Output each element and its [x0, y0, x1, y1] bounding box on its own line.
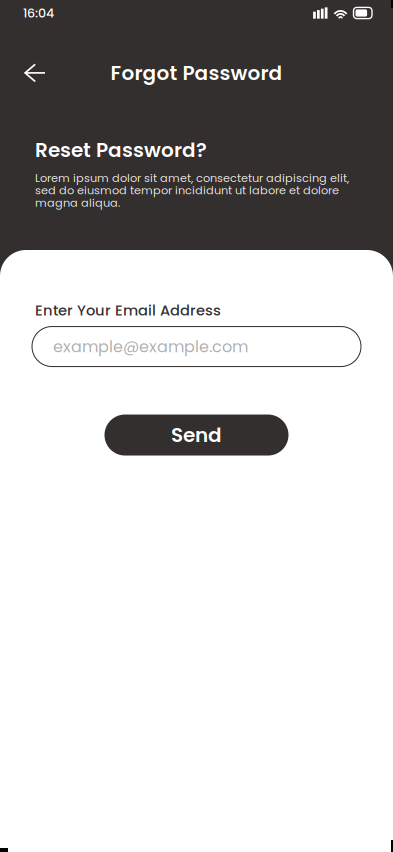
staticText: magna aliqua. [35, 195, 120, 211]
staticText: Forgot Password [110, 59, 282, 87]
staticText: 16:04 [23, 4, 54, 22]
staticText: Reset Password? [35, 136, 207, 164]
staticText: Lorem ipsum dolor sit amet, consectetur … [35, 170, 349, 186]
staticText: Send [171, 421, 222, 449]
button[interactable]: Back [11, 51, 59, 95]
staticText: sed do eiusmod tempor incididunt ut labo… [35, 182, 339, 198]
staticText: example@example.com [53, 335, 248, 358]
button[interactable]: Send [104, 414, 288, 455]
staticText: Enter Your Email Address [35, 300, 221, 320]
